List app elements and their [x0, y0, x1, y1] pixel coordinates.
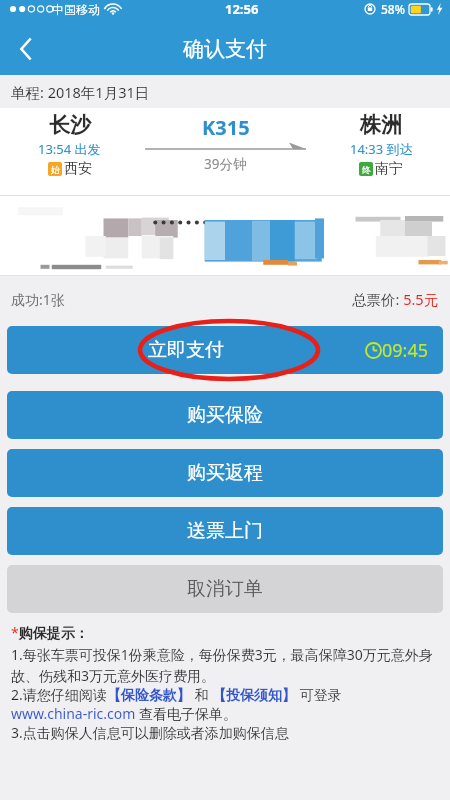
staticText: 12:56: [225, 0, 259, 18]
staticText: 确认支付: [183, 36, 267, 62]
button[interactable]: Passenger information: [0, 196, 450, 276]
button[interactable]: 取消订单: [7, 565, 443, 613]
button[interactable]: 购买返程: [7, 449, 443, 497]
staticText: 3.点击购保人信息可以删除或者添加购保信息: [11, 723, 289, 742]
button[interactable]: 送票上门: [7, 507, 443, 555]
staticText: 总票价: 5.5元: [352, 289, 439, 309]
button[interactable]: www.china-ric.com 查看电子保单。: [11, 704, 237, 723]
staticText: 立即支付: [148, 338, 224, 362]
staticText: 取消订单: [187, 577, 263, 601]
staticText: *购保提示：: [11, 623, 89, 642]
button[interactable]: 2.请您仔细阅读【保险条款】 和 【投保须知】 可登录: [11, 685, 342, 704]
staticText: K315: [202, 114, 250, 141]
staticText: 株洲: [360, 112, 402, 138]
staticText: 西安: [64, 160, 92, 178]
staticText: 14:33 到达: [350, 140, 413, 158]
button[interactable]: Back: [0, 22, 52, 75]
staticText: 南宁: [375, 160, 403, 178]
staticText: 终: [362, 164, 371, 175]
staticText: 58%: [381, 1, 405, 17]
staticText: 中国移动: [52, 2, 100, 17]
button[interactable]: 立即支付: [7, 326, 443, 374]
staticText: 09:45: [382, 338, 429, 363]
staticText: 1.每张车票可投保1份乘意险，每份保费3元，最高保障30万元意外身故、伤残和3万…: [11, 645, 442, 685]
staticText: 送票上门: [187, 519, 263, 543]
staticText: 13:54 出发: [38, 140, 101, 158]
staticText: 始: [51, 164, 60, 175]
staticText: 39分钟: [204, 155, 247, 173]
staticText: 购买返程: [187, 461, 263, 485]
staticText: 长沙: [49, 112, 91, 138]
staticText: 单程: 2018年1月31日: [11, 82, 150, 102]
staticText: 成功:1张: [11, 290, 65, 309]
button[interactable]: 购买保险: [7, 391, 443, 439]
button[interactable]: 长沙: [0, 108, 450, 196]
staticText: 购买保险: [187, 403, 263, 427]
